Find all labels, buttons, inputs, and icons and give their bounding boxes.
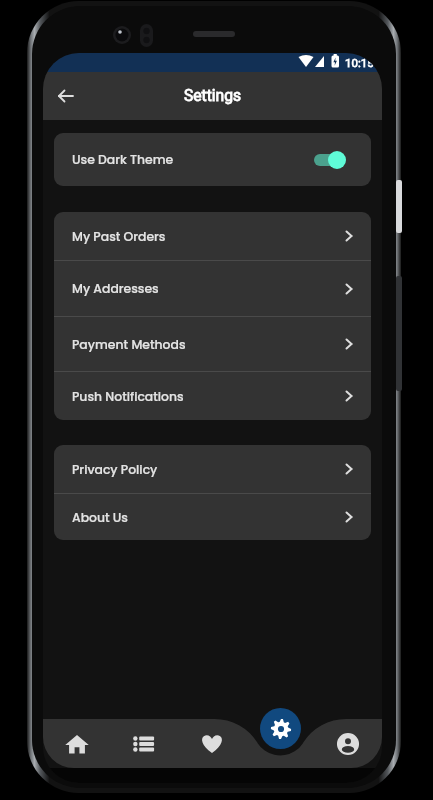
button[interactable]: Privacy Policy — [54, 445, 371, 493]
button[interactable]: Push Notifications — [54, 372, 371, 420]
button[interactable]: Payment Methods — [54, 317, 371, 371]
button[interactable]: Home — [43, 720, 110, 768]
staticText: Settings — [184, 87, 241, 105]
button[interactable]: Use Dark Theme toggle — [314, 150, 346, 170]
staticText: Use Dark Theme — [72, 151, 174, 168]
button[interactable]: Orders — [110, 720, 178, 768]
staticText: About Us — [72, 509, 345, 526]
staticText: Push Notifications — [72, 388, 345, 405]
button[interactable]: My Addresses — [54, 261, 371, 316]
staticText: Payment Methods — [72, 336, 345, 353]
button[interactable]: Settings — [260, 708, 301, 749]
button[interactable]: About Us — [54, 494, 371, 540]
staticText: 10:15 — [345, 56, 374, 69]
button[interactable]: Use Dark Theme — [54, 133, 371, 186]
staticText: My Past Orders — [72, 228, 345, 245]
staticText: My Addresses — [72, 280, 345, 297]
button[interactable]: Back — [53, 83, 79, 109]
button[interactable]: My Past Orders — [54, 212, 371, 260]
button[interactable]: Profile — [314, 720, 382, 768]
button[interactable]: Favourites — [178, 720, 246, 768]
staticText: Privacy Policy — [72, 461, 345, 478]
